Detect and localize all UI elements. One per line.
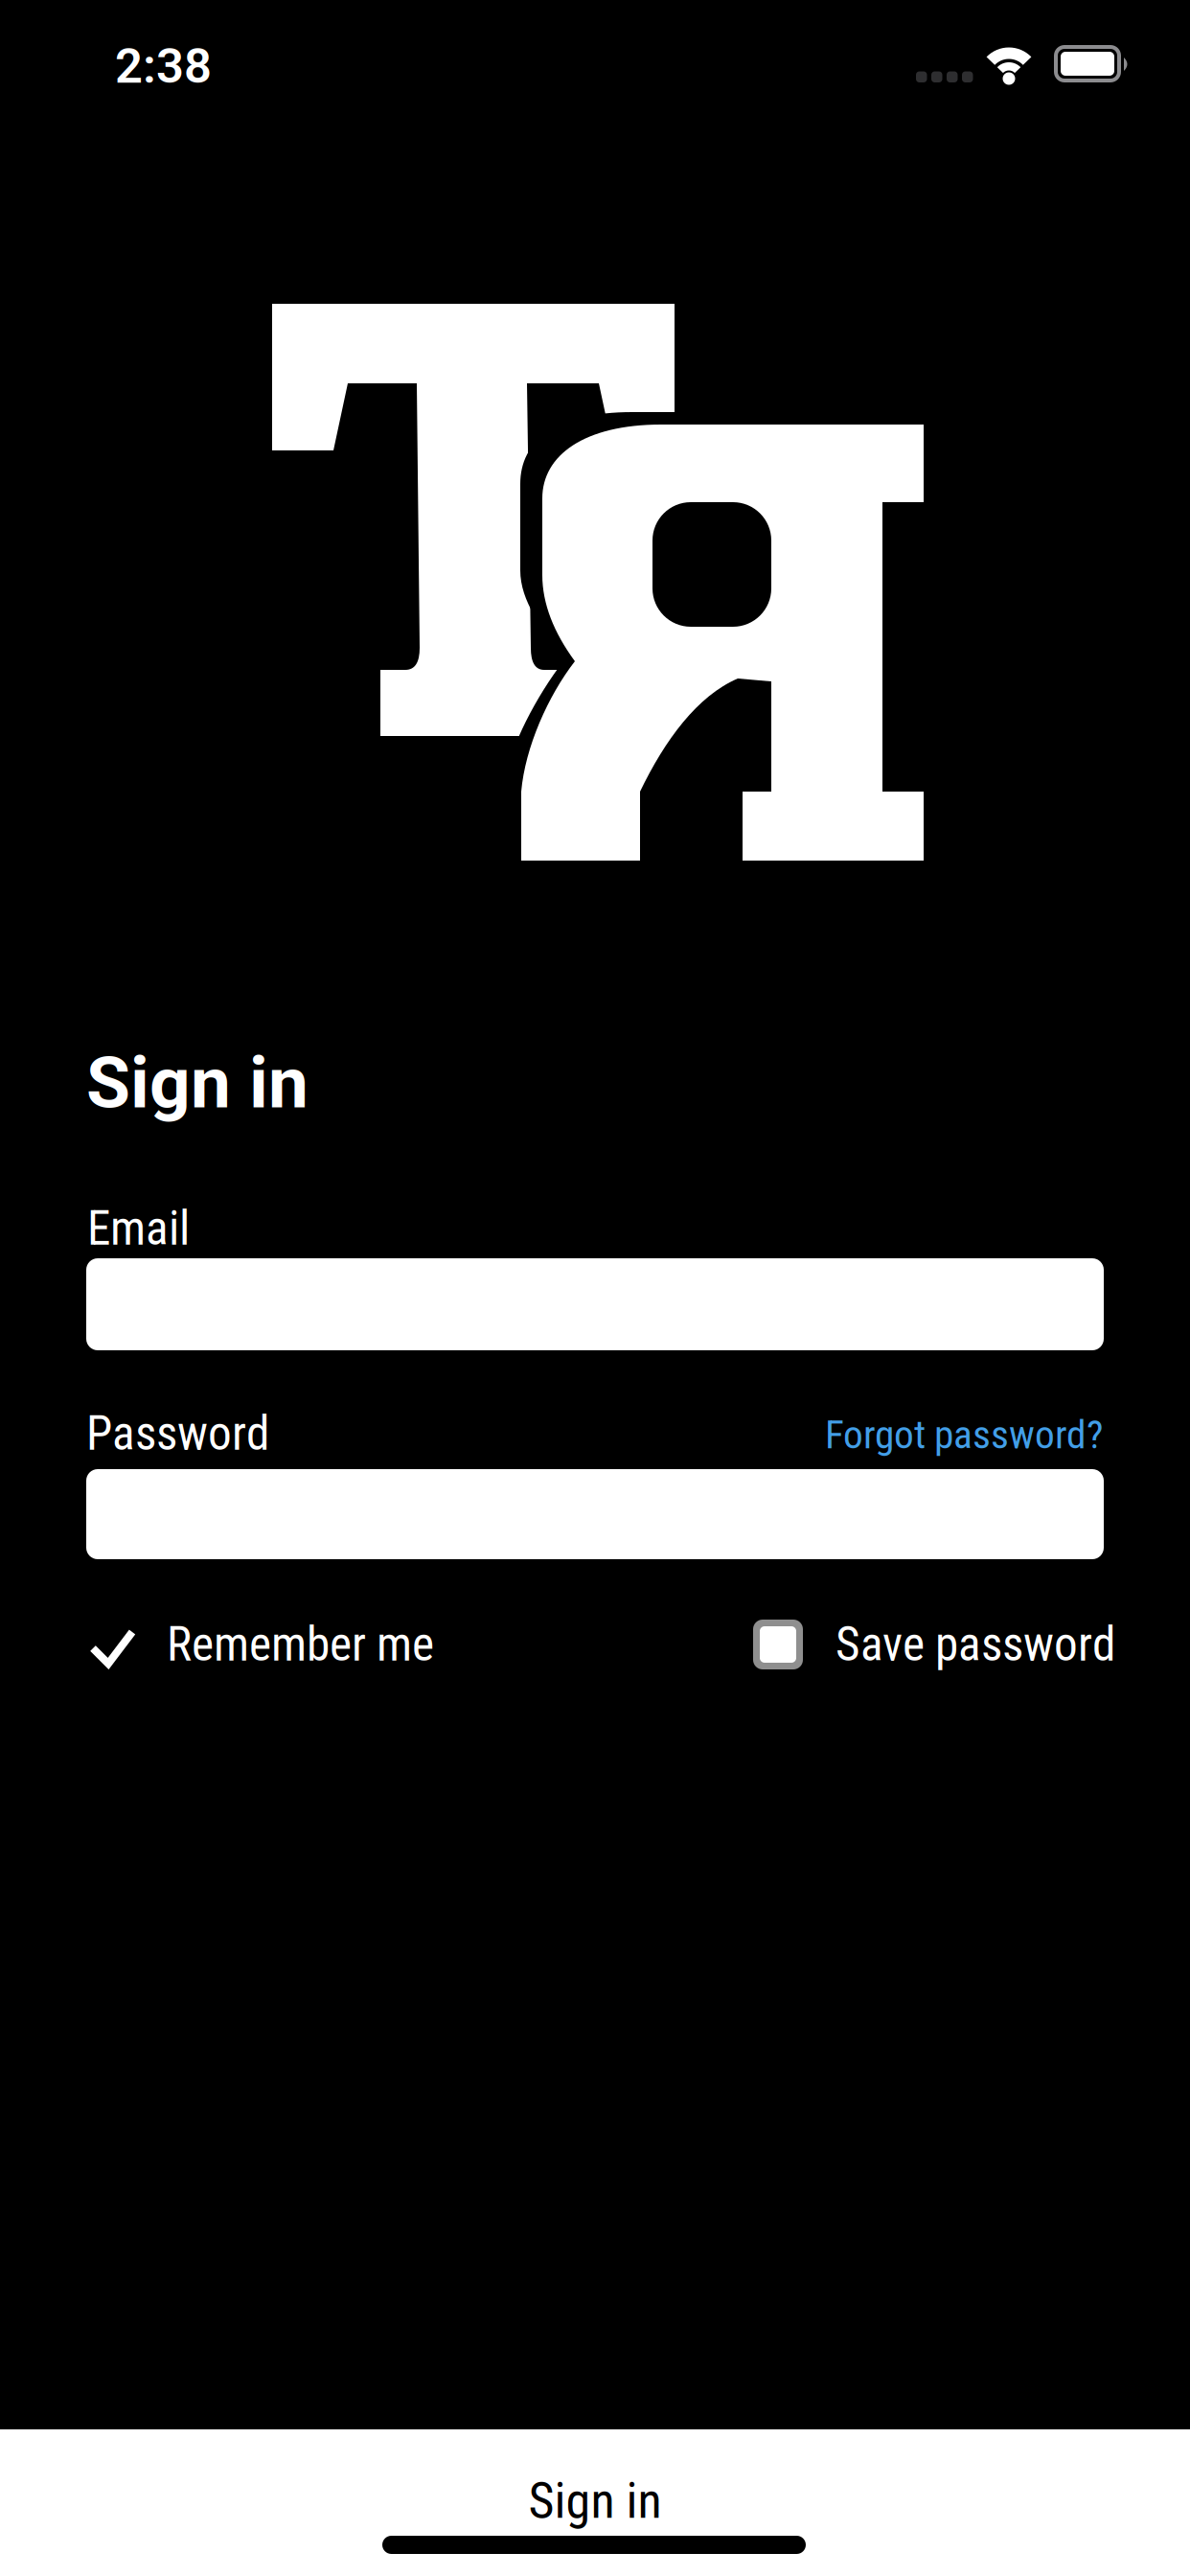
staticText: Remember me [167,1617,434,1672]
staticText: Email [87,1201,190,1256]
staticText: Forgot password? [825,1411,1103,1458]
button[interactable]: Save password [753,1620,1190,1669]
staticText: Save password [835,1617,1115,1672]
staticText: 2:38 [115,38,212,95]
button[interactable]: Remember me [84,1620,1190,1669]
staticText: Sign in [86,1041,309,1125]
staticText: Password [86,1406,269,1461]
button[interactable]: Forgot password? [825,1411,1103,1458]
button[interactable]: Sign in [0,2429,1190,2576]
staticText: Sign in [528,2472,662,2530]
